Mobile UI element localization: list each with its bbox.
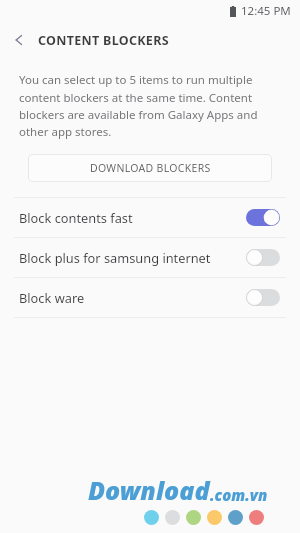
staticText: DOWNLOAD BLOCKERS — [90, 161, 211, 175]
staticText: Block contents fast — [19, 209, 246, 226]
staticText: 12:45 PM — [241, 3, 291, 19]
staticText: Download — [88, 473, 210, 507]
button[interactable]: DOWNLOAD BLOCKERS — [28, 154, 272, 182]
staticText: Block ware — [19, 289, 246, 306]
staticText: .com.vn — [210, 485, 268, 505]
staticText: CONTENT BLOCKERS — [38, 32, 169, 49]
button[interactable]: Block plus for samsung internet — [0, 238, 300, 277]
button[interactable]: Block contents fast — [0, 198, 300, 237]
staticText: You can select up to 5 items to run mult… — [19, 72, 279, 139]
button[interactable]: Block ware — [0, 278, 300, 317]
button[interactable]: Back — [0, 22, 38, 58]
staticText: Block plus for samsung internet — [19, 249, 246, 266]
